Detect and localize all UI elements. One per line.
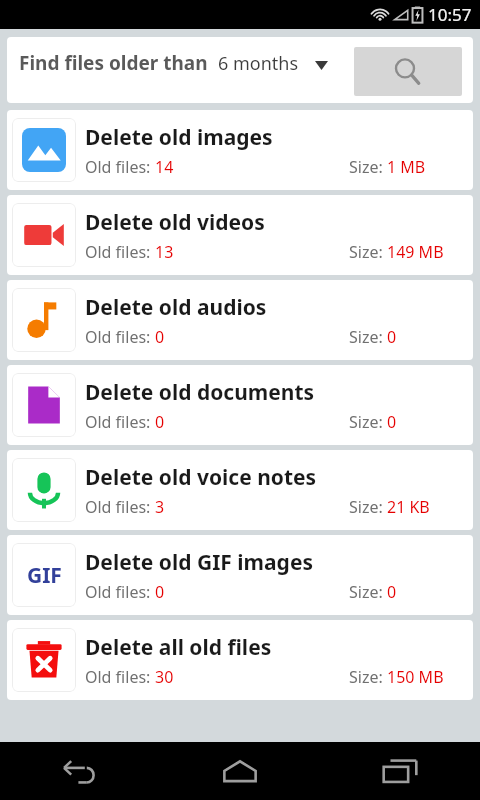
button[interactable]: Delete old audios — [7, 280, 473, 360]
staticText: 3 — [155, 496, 165, 518]
staticText: 14 — [155, 156, 174, 178]
staticText: 0 — [387, 411, 397, 433]
staticText: Delete old documents — [85, 378, 315, 407]
staticText: 13 — [155, 241, 174, 263]
staticText: 10:57 — [428, 3, 472, 26]
staticText: Size: — [349, 411, 387, 433]
staticText: 0 — [387, 581, 397, 603]
staticText: Old files: — [85, 241, 155, 263]
button[interactable]: Recent apps — [320, 742, 480, 800]
staticText: Delete old videos — [85, 208, 265, 237]
button[interactable]: 6 months — [218, 47, 328, 76]
button[interactable]: Delete old images — [7, 110, 473, 190]
staticText: Size: — [349, 496, 387, 518]
staticText: Size: — [349, 241, 387, 263]
button[interactable]: Delete old documents — [7, 365, 473, 445]
staticText: Old files: — [85, 581, 155, 603]
button[interactable]: Back — [0, 742, 160, 800]
staticText: Size: — [349, 666, 387, 688]
staticText: Old files: — [85, 411, 155, 433]
button[interactable]: Delete all old files — [7, 620, 473, 700]
staticText: Size: — [349, 581, 387, 603]
staticText: Old files: — [85, 496, 155, 518]
staticText: 1 MB — [387, 156, 426, 178]
button[interactable]: Delete old videos — [7, 195, 473, 275]
staticText: 0 — [155, 326, 165, 348]
staticText: Delete old voice notes — [85, 463, 317, 492]
staticText: Old files: — [85, 666, 155, 688]
button[interactable]: Search — [354, 47, 462, 96]
staticText: Old files: — [85, 326, 155, 348]
staticText: 0 — [155, 581, 165, 603]
staticText: 21 KB — [387, 496, 430, 518]
staticText: 30 — [155, 666, 174, 688]
staticText: Size: — [349, 326, 387, 348]
staticText: Old files: — [85, 156, 155, 178]
staticText: 0 — [155, 411, 165, 433]
staticText: 150 MB — [387, 666, 444, 688]
staticText: Find files older than — [19, 50, 208, 76]
staticText: Delete old GIF images — [85, 548, 313, 577]
staticText: GIF — [27, 561, 62, 590]
button[interactable]: Home — [160, 742, 320, 800]
staticText: Size: — [349, 156, 387, 178]
staticText: 149 MB — [387, 241, 444, 263]
staticText: Delete old audios — [85, 293, 267, 322]
staticText: 6 months — [218, 51, 299, 76]
staticText: Delete old images — [85, 123, 273, 152]
button[interactable]: GIF — [7, 535, 473, 615]
button[interactable]: Delete old voice notes — [7, 450, 473, 530]
staticText: Delete all old files — [85, 633, 272, 662]
staticText: 0 — [387, 326, 397, 348]
